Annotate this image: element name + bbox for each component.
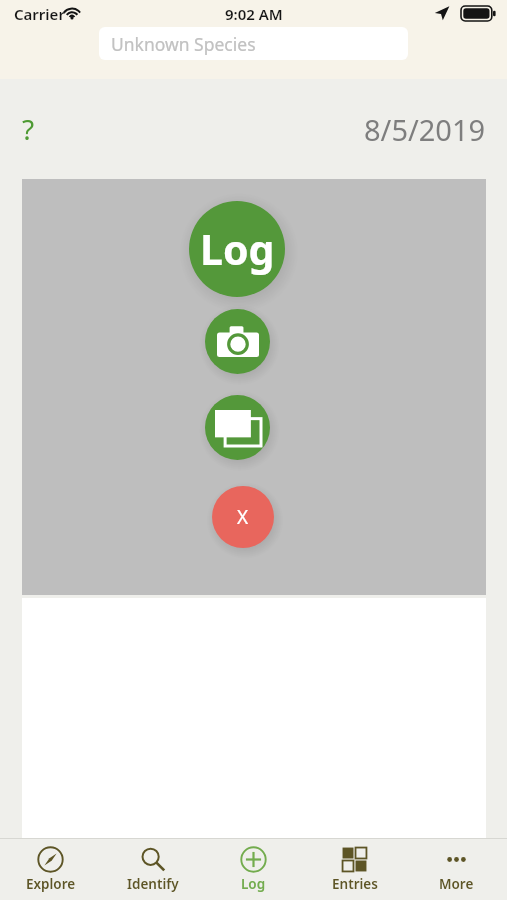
staticText: ? bbox=[22, 110, 35, 148]
button[interactable]: More bbox=[406, 839, 507, 900]
staticText: X bbox=[237, 504, 249, 530]
staticText: Carrier bbox=[14, 4, 65, 24]
button[interactable]: Explore bbox=[0, 839, 101, 900]
staticText: 9:02 AM bbox=[225, 4, 283, 24]
button[interactable]: Take photo bbox=[205, 309, 270, 374]
staticText: Unknown Species bbox=[111, 32, 256, 56]
staticText: Explore bbox=[26, 875, 76, 893]
button[interactable]: Cancel bbox=[212, 486, 274, 548]
staticText: 8/5/2019 bbox=[364, 110, 486, 149]
staticText: Log bbox=[241, 875, 266, 893]
staticText: Identify bbox=[127, 875, 179, 893]
button[interactable]: ? bbox=[22, 110, 35, 148]
button[interactable]: Log bbox=[189, 201, 285, 297]
staticText: Entries bbox=[332, 875, 378, 893]
staticText: Log bbox=[200, 221, 275, 277]
button[interactable]: Unknown Species bbox=[99, 27, 408, 60]
button[interactable]: Log bbox=[203, 839, 304, 900]
button[interactable]: Identify bbox=[102, 839, 203, 900]
button[interactable]: Entries bbox=[304, 839, 405, 900]
staticText: More bbox=[439, 875, 474, 893]
button[interactable]: Photo library bbox=[205, 395, 270, 460]
